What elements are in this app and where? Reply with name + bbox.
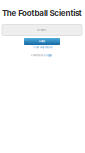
staticText: The Football Scientist [2,8,82,18]
staticText: Home [39,40,45,43]
button[interactable]: Home [24,38,60,45]
staticText: View web version [33,46,52,49]
staticText: Powered by [31,54,44,57]
staticText: No posts. [37,28,47,31]
staticText: Blogger [44,54,52,57]
button[interactable]: View web version [33,46,52,49]
